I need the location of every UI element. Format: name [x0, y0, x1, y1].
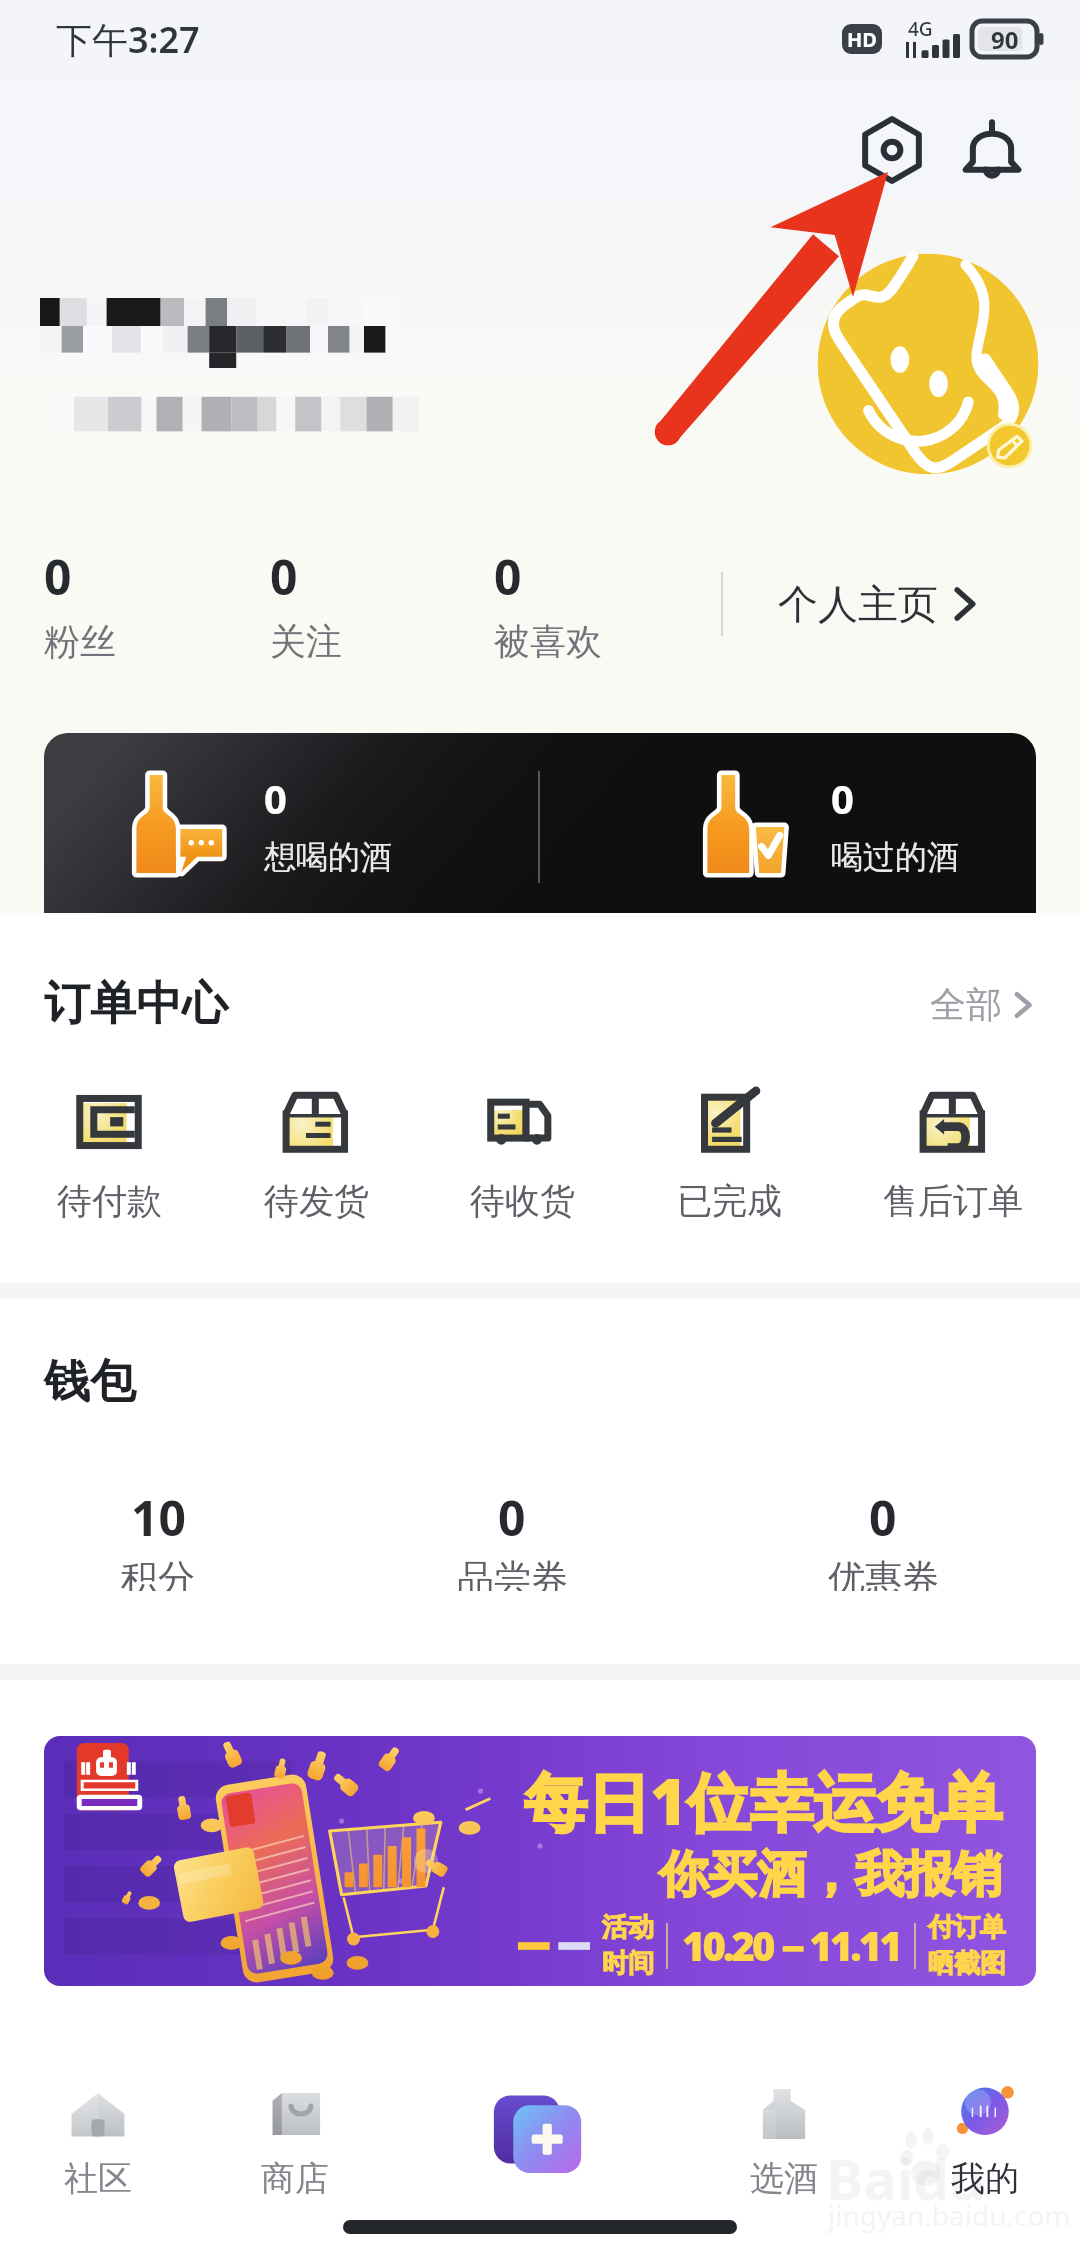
button[interactable]: 个人主页: [778, 560, 978, 648]
staticText: 待收货: [470, 1179, 575, 1221]
button[interactable]: 社区: [28, 2081, 168, 2200]
staticText: 0: [831, 771, 854, 825]
staticText: 0: [264, 771, 287, 825]
staticText: 待发货: [264, 1179, 369, 1221]
staticText: 0: [494, 544, 522, 609]
button[interactable]: 售后订单: [853, 1091, 1053, 1221]
staticText: 商店: [261, 2157, 329, 2200]
staticText: jingyan.baidu.com: [828, 2196, 1071, 2234]
button[interactable]: 每日1位幸运免单: [44, 1736, 1036, 1986]
staticText: 0: [498, 1485, 526, 1550]
staticText: 0: [44, 544, 72, 609]
staticText: 全部: [930, 982, 1002, 1027]
staticText: 喝过的酒: [831, 837, 959, 877]
button[interactable]: Add post: [490, 2080, 587, 2177]
button[interactable]: 商店: [225, 2081, 365, 2200]
staticText: 个人主页: [778, 579, 938, 629]
staticText: 10.20－11.11: [682, 1918, 900, 1973]
staticText: 时间: [602, 1947, 654, 1980]
button[interactable]: 我的: [915, 2081, 1055, 2200]
staticText: 你买酒，我报销: [659, 1844, 1002, 1906]
staticText: 优惠券: [828, 1555, 939, 1591]
button[interactable]: 10: [48, 1485, 268, 1591]
button[interactable]: 待收货: [422, 1091, 622, 1221]
button[interactable]: 0: [44, 544, 116, 664]
staticText: 待付款: [57, 1179, 162, 1221]
button[interactable]: 0: [402, 1485, 622, 1591]
button[interactable]: Settings: [848, 106, 936, 194]
button[interactable]: Notifications: [948, 106, 1036, 194]
staticText: 积分: [121, 1555, 195, 1591]
staticText: 90: [991, 23, 1019, 56]
staticText: 0: [869, 1485, 897, 1550]
button[interactable]: 选酒: [714, 2081, 854, 2200]
staticText: 0: [270, 544, 298, 609]
staticText: 钱包: [44, 1353, 136, 1411]
staticText: Baidu: [826, 2140, 986, 2216]
staticText: 晒截图: [928, 1947, 1006, 1980]
staticText: 10: [131, 1485, 186, 1550]
button[interactable]: 待发货: [216, 1091, 416, 1221]
staticText: 社区: [64, 2157, 132, 2200]
button[interactable]: 待付款: [9, 1091, 209, 1221]
staticText: 4G: [908, 16, 933, 42]
button[interactable]: 全部: [930, 982, 1034, 1027]
staticText: 关注: [270, 619, 342, 664]
button[interactable]: 0: [270, 544, 342, 664]
staticText: 粉丝: [44, 619, 116, 664]
button[interactable]: 0: [773, 1485, 993, 1591]
button[interactable]: Edit profile photo: [816, 252, 1040, 476]
staticText: 想喝的酒: [264, 837, 392, 877]
staticText: 售后订单: [883, 1179, 1023, 1221]
staticText: 我的: [951, 2157, 1019, 2200]
staticText: 订单中心: [44, 975, 228, 1033]
button[interactable]: 已完成: [629, 1091, 829, 1221]
button[interactable]: 0: [494, 544, 602, 664]
staticText: 已完成: [677, 1179, 782, 1221]
staticText: 品尝券: [457, 1555, 568, 1591]
staticText: HD: [847, 26, 877, 53]
staticText: 被喜欢: [494, 619, 602, 664]
staticText: 付订单: [928, 1911, 1006, 1944]
staticText: 下午3:27: [56, 15, 200, 64]
staticText: 每日1位幸运免单: [524, 1758, 1002, 1844]
staticText: 活动: [602, 1911, 654, 1944]
button[interactable]: 0: [44, 733, 1036, 938]
staticText: 选酒: [750, 2157, 818, 2200]
